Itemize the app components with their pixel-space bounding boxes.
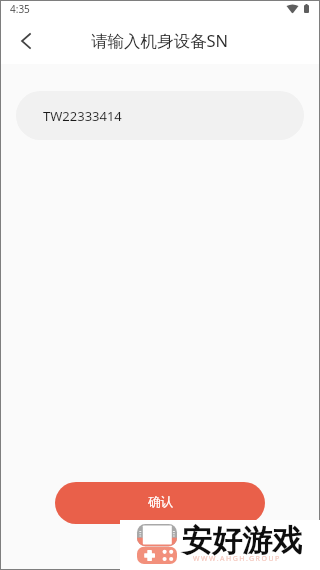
staticText: 请输入机身设备SN — [91, 29, 229, 52]
staticText: 4:35 — [10, 2, 30, 16]
staticText: TW22333414 — [43, 107, 122, 125]
staticText: 确认 — [148, 494, 173, 510]
staticText: WWW.AHGH.GROUP — [193, 554, 281, 564]
button[interactable]: Back — [8, 23, 44, 59]
button[interactable]: TW22333414 — [16, 91, 304, 140]
staticText: 安好游戏 — [182, 522, 302, 560]
button[interactable]: 确认 — [55, 482, 265, 524]
